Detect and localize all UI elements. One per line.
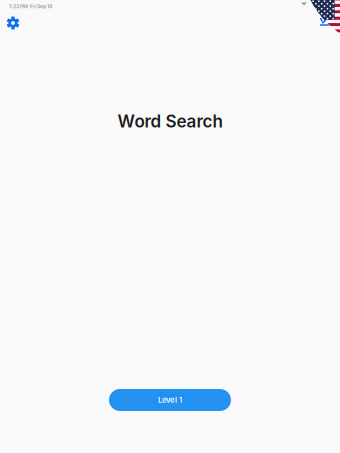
button[interactable]: Level 1 bbox=[109, 389, 231, 411]
button[interactable]: Settings bbox=[0, 10, 26, 36]
staticText: Level 1 bbox=[158, 395, 182, 405]
staticText: 1:23 PM bbox=[9, 3, 28, 9]
staticText: Fri Sep 18 bbox=[30, 3, 52, 9]
button[interactable]: Change language bbox=[298, 0, 340, 40]
staticText: Word Search bbox=[117, 111, 222, 132]
